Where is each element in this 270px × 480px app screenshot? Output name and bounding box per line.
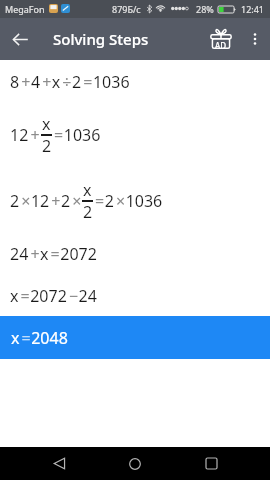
staticText: 24 +x =2072 bbox=[10, 243, 97, 265]
staticText: 28% bbox=[196, 3, 214, 15]
button[interactable]: More options bbox=[240, 24, 270, 54]
staticText: x =2048 bbox=[11, 327, 68, 349]
button[interactable]: 24 +x =2072 bbox=[0, 232, 270, 276]
button[interactable]: Watch ad bbox=[202, 20, 240, 58]
staticText: =2 ×1036 bbox=[93, 190, 163, 212]
button[interactable]: Home bbox=[118, 447, 152, 480]
button[interactable]: x =2048 bbox=[0, 316, 270, 359]
staticText: 12:41 bbox=[241, 3, 265, 15]
button[interactable]: x =2072 −24 bbox=[0, 274, 270, 318]
staticText: =1036 bbox=[52, 124, 101, 146]
staticText: 8 +4 +x ÷2 =1036 bbox=[10, 71, 130, 93]
staticText: AD bbox=[215, 40, 227, 51]
staticText: x bbox=[42, 113, 51, 135]
button[interactable]: 12 + bbox=[0, 111, 270, 159]
staticText: x =2072 −24 bbox=[10, 285, 97, 307]
button[interactable]: 8 +4 +x ÷2 =1036 bbox=[0, 60, 270, 104]
staticText: 12 + bbox=[10, 124, 41, 146]
staticText: 2 bbox=[42, 135, 52, 157]
button[interactable]: 2 ×12 +2 × bbox=[0, 177, 270, 225]
staticText: MegaFon bbox=[5, 3, 45, 15]
staticText: 879Б/с bbox=[112, 3, 141, 15]
staticText: Solving Steps bbox=[53, 29, 149, 49]
staticText: x bbox=[83, 179, 92, 201]
button[interactable]: Recent apps bbox=[194, 447, 228, 480]
staticText: 2 bbox=[83, 201, 93, 223]
staticText: 2 ×12 +2 × bbox=[10, 190, 82, 212]
button[interactable]: Back bbox=[42, 447, 76, 480]
button[interactable]: Navigate up bbox=[0, 19, 40, 59]
